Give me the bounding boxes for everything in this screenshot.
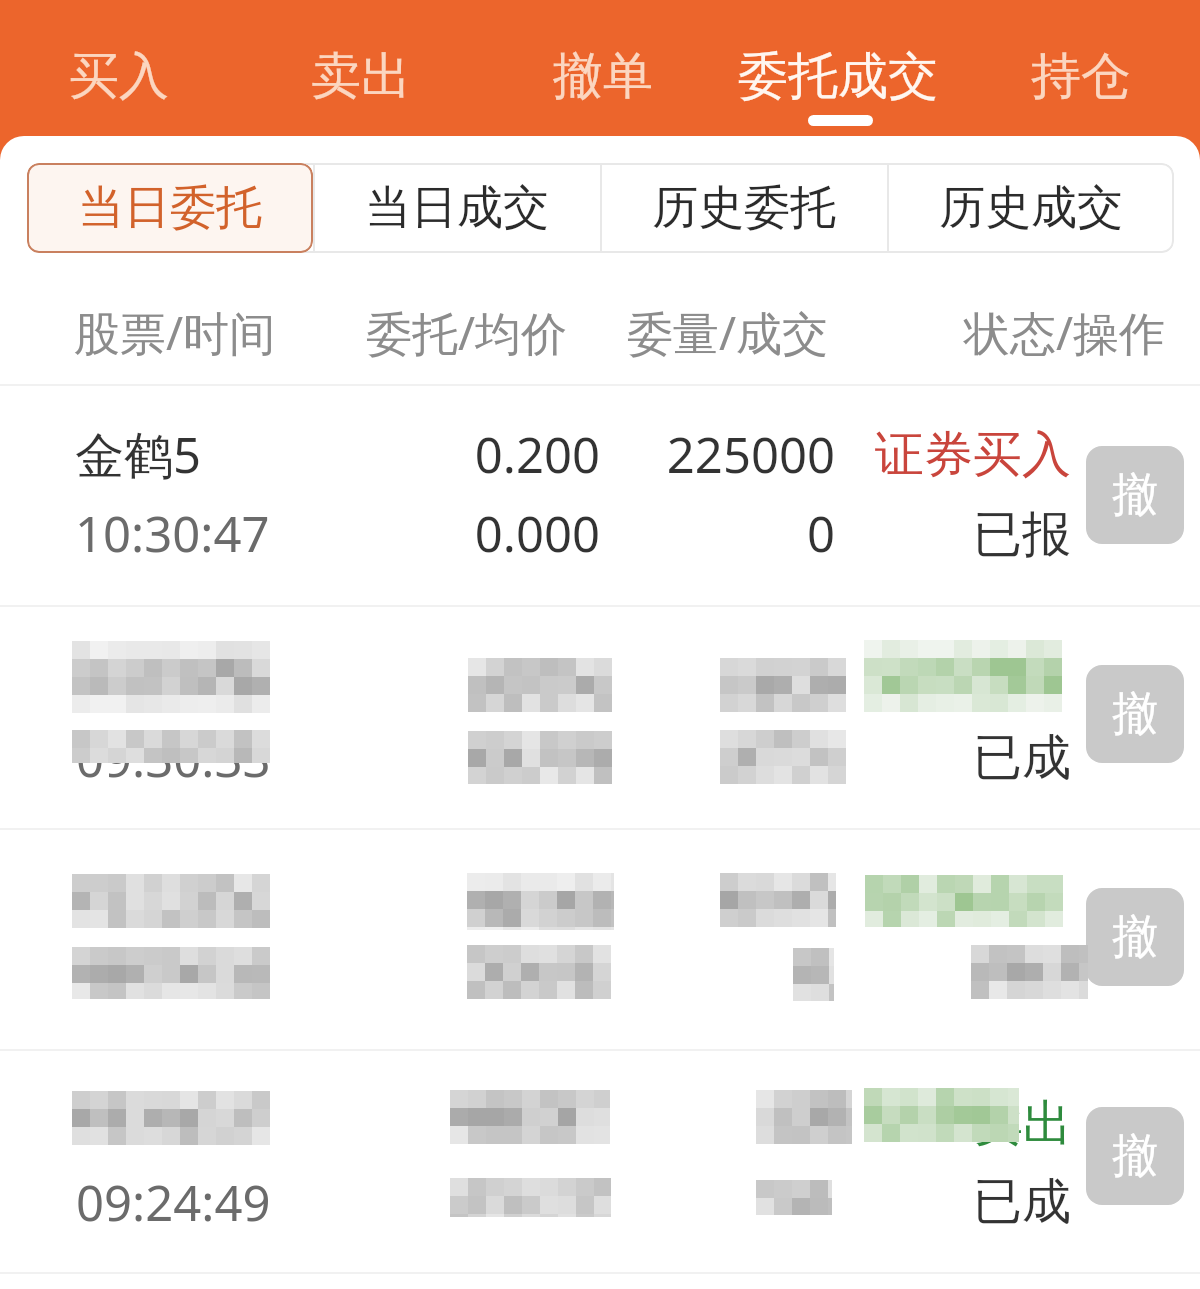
staticText: 已报 <box>0 504 1071 566</box>
button[interactable]: 撤单 <box>1086 1107 1184 1205</box>
button[interactable]: 撤单 <box>1086 888 1184 986</box>
staticText: 证券买入 <box>0 424 1071 486</box>
staticText: 撤 <box>1112 1127 1158 1185</box>
staticText: 股票/时间 <box>74 301 276 364</box>
button[interactable]: 撤单 <box>1086 665 1184 763</box>
button[interactable]: 历史成交 <box>887 163 1174 253</box>
button[interactable]: 当日委托 <box>27 163 313 253</box>
staticText: 当日成交 <box>365 179 549 237</box>
staticText: 委量/成交 <box>627 301 829 364</box>
staticText: 卖出 <box>311 45 411 108</box>
staticText: 09:24:49 <box>76 1169 271 1236</box>
button[interactable]: 持仓 <box>999 0 1163 136</box>
staticText: 09:30:33 <box>76 725 271 792</box>
staticText: 已成 <box>0 1171 1071 1233</box>
staticText: 225000 <box>0 421 835 488</box>
staticText: 卖出 <box>0 1093 1072 1155</box>
button[interactable]: 买入 <box>37 0 201 136</box>
staticText: 委托成交 <box>738 45 938 108</box>
staticText: 持仓 <box>1031 45 1131 108</box>
button[interactable]: 历史委托 <box>600 163 887 253</box>
staticText: 撤 <box>1112 685 1158 743</box>
staticText: 撤 <box>1112 908 1158 966</box>
button[interactable]: 撤单 <box>521 0 685 136</box>
staticText: 已成 <box>0 727 1071 789</box>
staticText: 买入 <box>69 45 169 108</box>
button[interactable]: 撤单 <box>0 828 1200 1049</box>
staticText: 10:30:47 <box>75 500 270 567</box>
button[interactable]: 撤单 <box>1086 446 1184 544</box>
button[interactable]: 09:24:49 <box>0 1049 1200 1272</box>
button[interactable]: 09:30:33 <box>0 605 1200 828</box>
staticText: 撤单 <box>553 45 653 108</box>
staticText: 历史成交 <box>939 179 1123 237</box>
staticText: 0.000 <box>0 500 600 567</box>
button[interactable]: 金鹤5 <box>0 384 1200 605</box>
button[interactable]: 卖出 <box>279 0 443 136</box>
staticText: 历史委托 <box>652 179 836 237</box>
staticText: 金鹤5 <box>75 421 202 488</box>
staticText: 0.200 <box>0 421 600 488</box>
button[interactable]: 委托成交 <box>720 0 956 136</box>
staticText: 状态/操作 <box>964 301 1166 364</box>
staticText: 撤 <box>1112 466 1158 524</box>
staticText: 当日委托 <box>78 179 262 237</box>
staticText: 委托/均价 <box>366 301 568 364</box>
staticText: 0 <box>0 500 835 567</box>
button[interactable]: 当日成交 <box>313 163 600 253</box>
